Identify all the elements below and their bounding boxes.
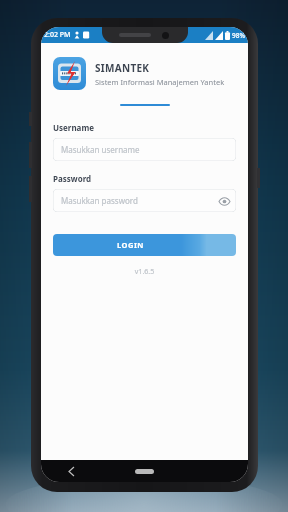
button[interactable]: Home	[135, 469, 154, 474]
staticText: SIMANTEK	[95, 61, 150, 75]
staticText: v1.6.5	[53, 267, 236, 277]
button[interactable]: LOGIN	[53, 234, 236, 256]
button[interactable]: Masukkan username	[53, 138, 236, 161]
button[interactable]: Masukkan password	[53, 189, 236, 212]
staticText: Password	[53, 173, 92, 184]
staticText: 2:02 PM	[44, 30, 71, 40]
staticText: Masukkan password	[61, 195, 138, 206]
staticText: Sistem Informasi Manajemen Yantek	[95, 77, 225, 87]
staticText: 98%	[232, 31, 245, 40]
staticText: Username	[53, 122, 94, 133]
staticText: LOGIN	[117, 240, 144, 250]
button[interactable]: Back	[63, 463, 79, 479]
staticText: Masukkan username	[61, 144, 140, 155]
button[interactable]: Show password	[217, 194, 231, 208]
